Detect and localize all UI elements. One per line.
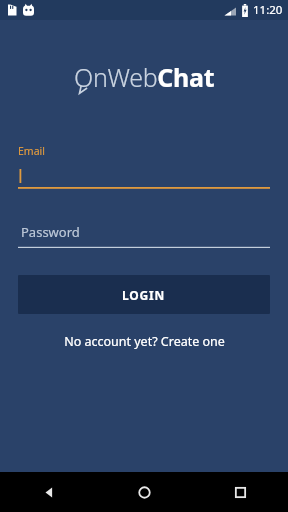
- button[interactable]: Back: [0, 472, 96, 512]
- staticText: No account yet? Create one: [64, 333, 225, 350]
- button[interactable]: No account yet? Create one: [50, 328, 239, 355]
- button[interactable]: Home: [96, 472, 192, 512]
- staticText: 11:20: [253, 2, 283, 18]
- staticText: Password: [21, 223, 80, 241]
- staticText: OnWebChat: [74, 60, 215, 94]
- button[interactable]: Recent apps: [192, 472, 288, 512]
- staticText: Email: [18, 144, 45, 158]
- button[interactable]: [18, 167, 270, 189]
- staticText: LOGIN: [122, 287, 166, 303]
- button[interactable]: LOGIN: [18, 275, 270, 314]
- button[interactable]: Password: [18, 222, 270, 248]
